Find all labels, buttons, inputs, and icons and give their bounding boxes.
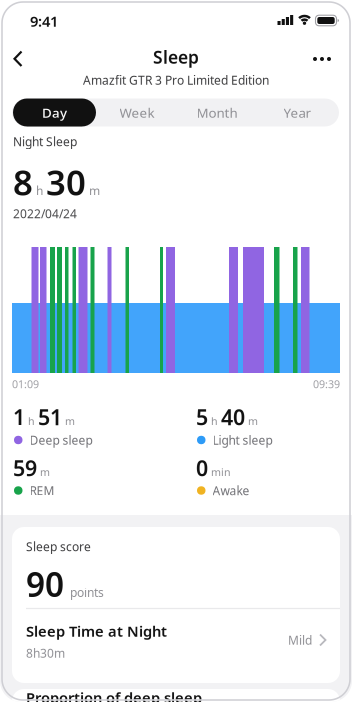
staticText: Month (196, 104, 237, 121)
staticText: 8 (13, 159, 33, 205)
staticText: 5 (196, 403, 208, 431)
staticText: points (70, 584, 104, 600)
staticText: Sleep score (26, 538, 91, 554)
button[interactable]: Month (177, 98, 257, 126)
staticText: 51 (38, 403, 62, 431)
staticText: 30 (46, 159, 86, 205)
staticText: REM (29, 482, 54, 498)
button[interactable]: Day (13, 98, 96, 126)
staticText: Sleep Time at Night (26, 621, 167, 641)
staticText: m (248, 414, 258, 428)
button[interactable]: Sleep Time at Night (12, 609, 340, 673)
staticText: 2022/04/24 (13, 205, 77, 221)
button[interactable]: Proportion of deep sleep (12, 689, 340, 702)
staticText: Light sleep (212, 432, 272, 448)
staticText: 9:41 (30, 11, 58, 31)
button[interactable]: Year (257, 98, 337, 126)
staticText: Awake (212, 482, 249, 498)
staticText: min (211, 465, 231, 479)
staticText: Mild (288, 632, 312, 648)
staticText: 90 (26, 562, 64, 606)
staticText: m (65, 414, 75, 428)
staticText: m (89, 183, 100, 199)
staticText: Proportion of deep sleep (26, 688, 202, 702)
button[interactable]: Week (97, 98, 177, 126)
staticText: 09:39 (313, 377, 340, 391)
staticText: 8h30m (26, 645, 65, 661)
staticText: h (28, 414, 35, 428)
staticText: 01:09 (12, 377, 39, 391)
staticText: 0 (196, 454, 208, 482)
staticText: Deep sleep (29, 432, 92, 448)
button[interactable] (311, 49, 333, 69)
staticText: m (40, 465, 50, 479)
staticText: h (211, 414, 218, 428)
staticText: Day (42, 104, 67, 121)
staticText: Week (119, 104, 154, 121)
staticText: 1 (13, 403, 25, 431)
button[interactable] (5, 44, 35, 74)
staticText: 40 (221, 403, 245, 431)
staticText: Year (283, 104, 311, 121)
staticText: 59 (13, 454, 37, 482)
staticText: Night Sleep (13, 133, 77, 149)
staticText: h (36, 183, 43, 199)
staticText: Sleep (153, 45, 199, 68)
staticText: Amazfit GTR 3 Pro Limited Edition (83, 72, 269, 88)
